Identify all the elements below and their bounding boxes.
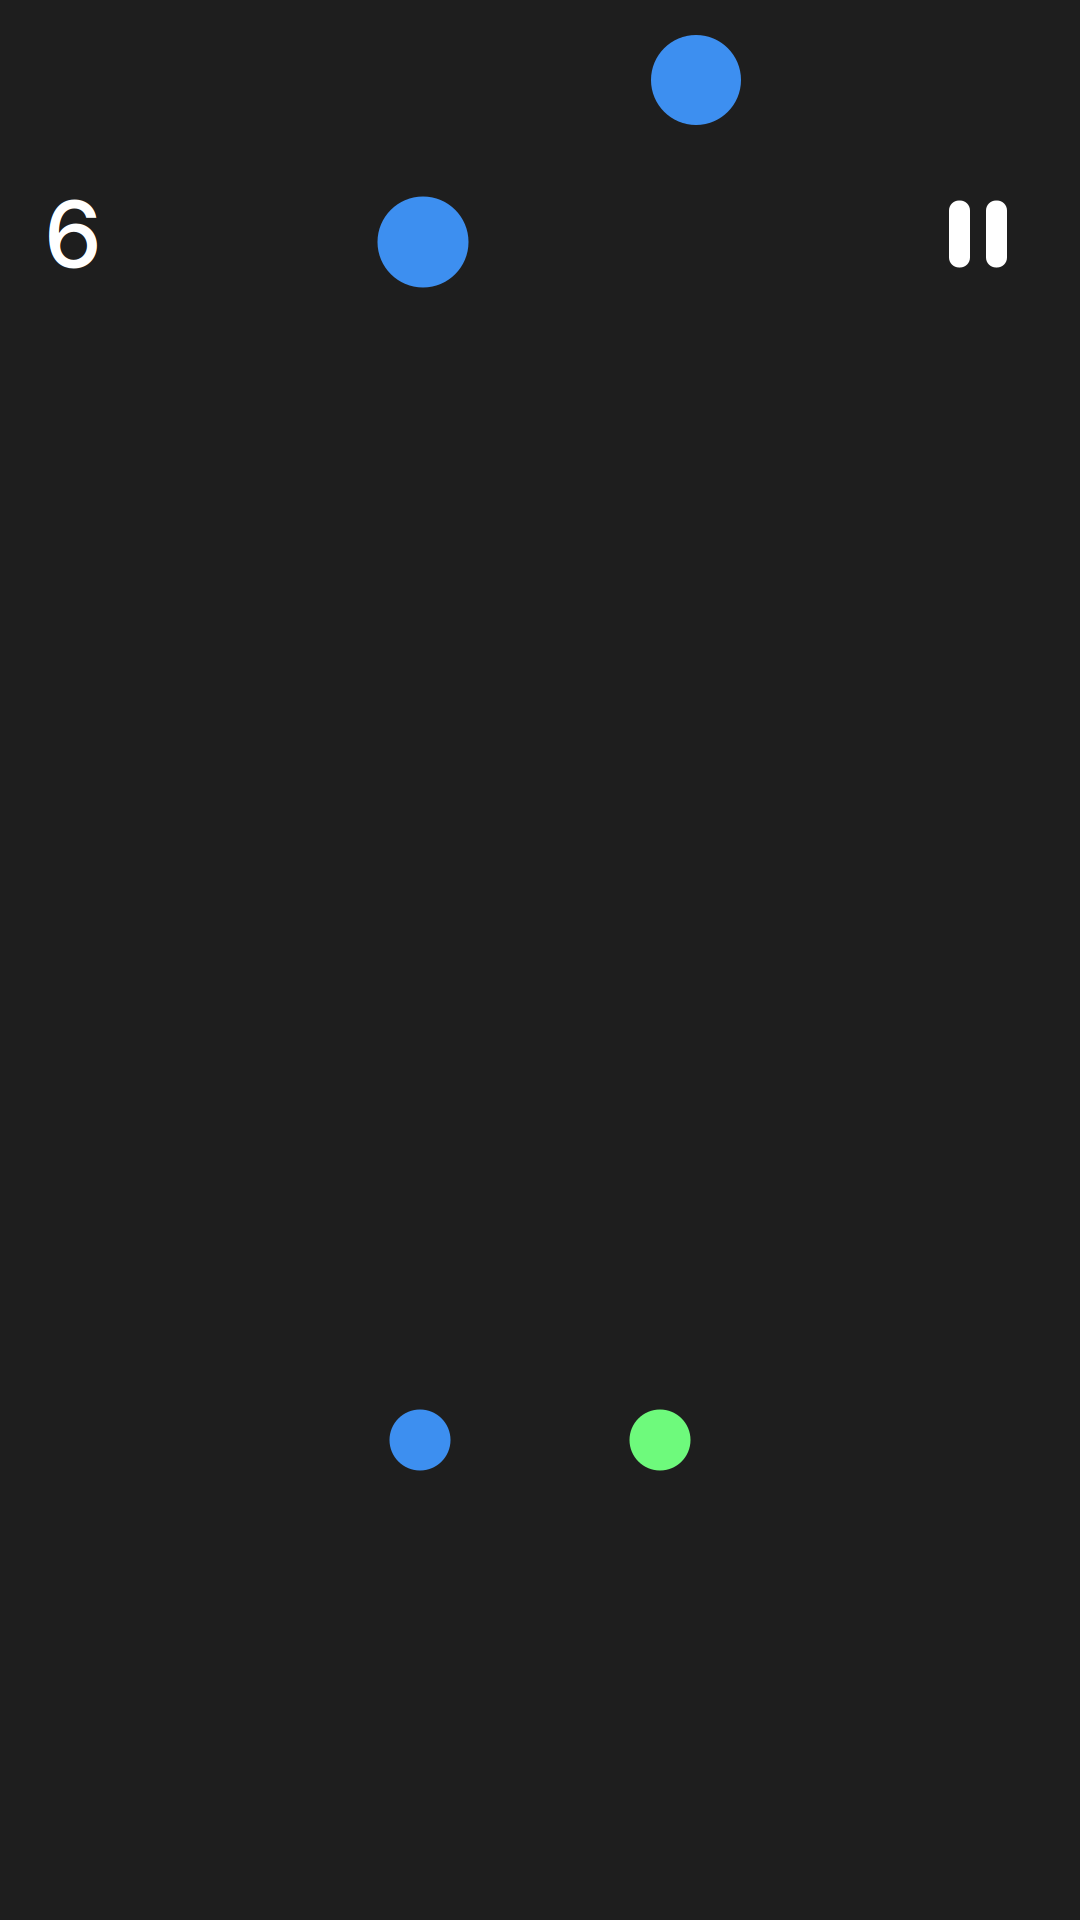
staticText: 6 [44, 178, 102, 290]
button[interactable]: Pause [913, 169, 1043, 299]
